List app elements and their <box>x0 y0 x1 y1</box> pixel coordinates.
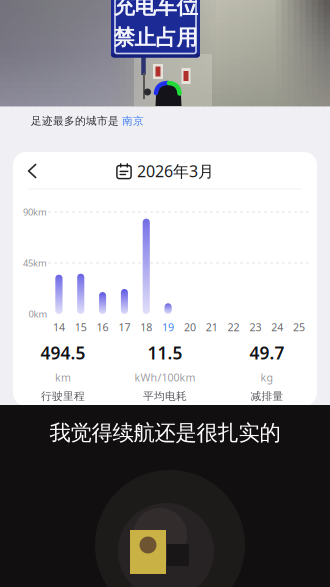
staticText: 19 <box>162 320 174 334</box>
staticText: 45km <box>23 257 47 269</box>
staticText: 24 <box>271 320 283 334</box>
staticText: 禁止占用 <box>113 24 197 51</box>
staticText: kWh/100km <box>134 370 195 385</box>
staticText: 17 <box>118 320 130 334</box>
staticText: 行驶里程 <box>41 389 85 403</box>
staticText: 20 <box>184 320 196 334</box>
staticText: 足迹最多的城市是 <box>31 114 122 127</box>
staticText: 22 <box>228 320 240 334</box>
staticText: kg <box>260 370 273 385</box>
staticText: 90km <box>23 206 47 218</box>
staticText: 15 <box>75 320 87 334</box>
staticText: 平均电耗 <box>143 389 187 403</box>
button[interactable]: Back <box>17 156 47 186</box>
staticText: 充电车位 <box>113 0 197 19</box>
staticText: 18 <box>140 320 152 334</box>
staticText: km <box>55 370 71 385</box>
staticText: 南京 <box>122 114 144 127</box>
staticText: 16 <box>97 320 109 334</box>
staticText: 49.7 <box>249 341 284 364</box>
staticText: 494.5 <box>40 341 85 364</box>
staticText: 23 <box>249 320 261 334</box>
staticText: 2026年3月 <box>137 160 214 182</box>
staticText: 减排量 <box>250 389 283 403</box>
staticText: 21 <box>206 320 218 334</box>
staticText: 14 <box>53 320 65 334</box>
staticText: 25 <box>293 320 305 334</box>
staticText: 0km <box>28 308 47 320</box>
staticText: 11.5 <box>147 341 182 364</box>
staticText: 我觉得续航还是很扎实的 <box>49 420 280 446</box>
